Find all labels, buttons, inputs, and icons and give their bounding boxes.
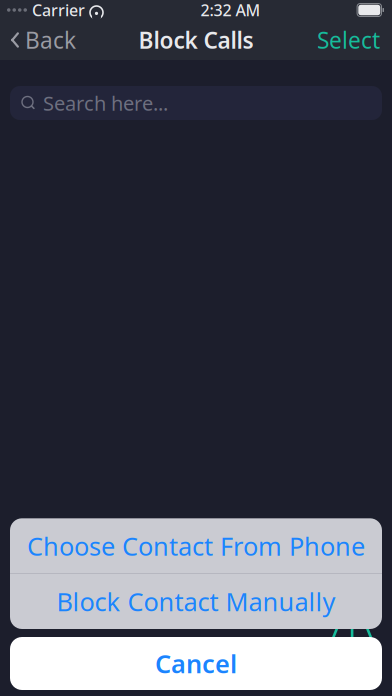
staticText: Choose Contact From Phone <box>27 529 365 563</box>
staticText: Block Calls <box>138 25 253 55</box>
staticText: 2:32 AM <box>201 0 261 21</box>
button[interactable]: Back <box>0 20 86 60</box>
button[interactable]: Cancel <box>10 637 382 690</box>
button[interactable]: Choose Contact From Phone <box>10 518 382 573</box>
button[interactable]: Block Contact Manually <box>10 574 382 629</box>
button[interactable]: Select <box>305 20 392 60</box>
staticText: Back <box>25 25 76 55</box>
staticText: Cancel <box>155 647 237 680</box>
staticText: Search here... <box>43 90 168 116</box>
staticText: Block Contact Manually <box>56 585 335 618</box>
staticText: Carrier <box>32 0 85 21</box>
staticText: Select <box>317 25 380 55</box>
